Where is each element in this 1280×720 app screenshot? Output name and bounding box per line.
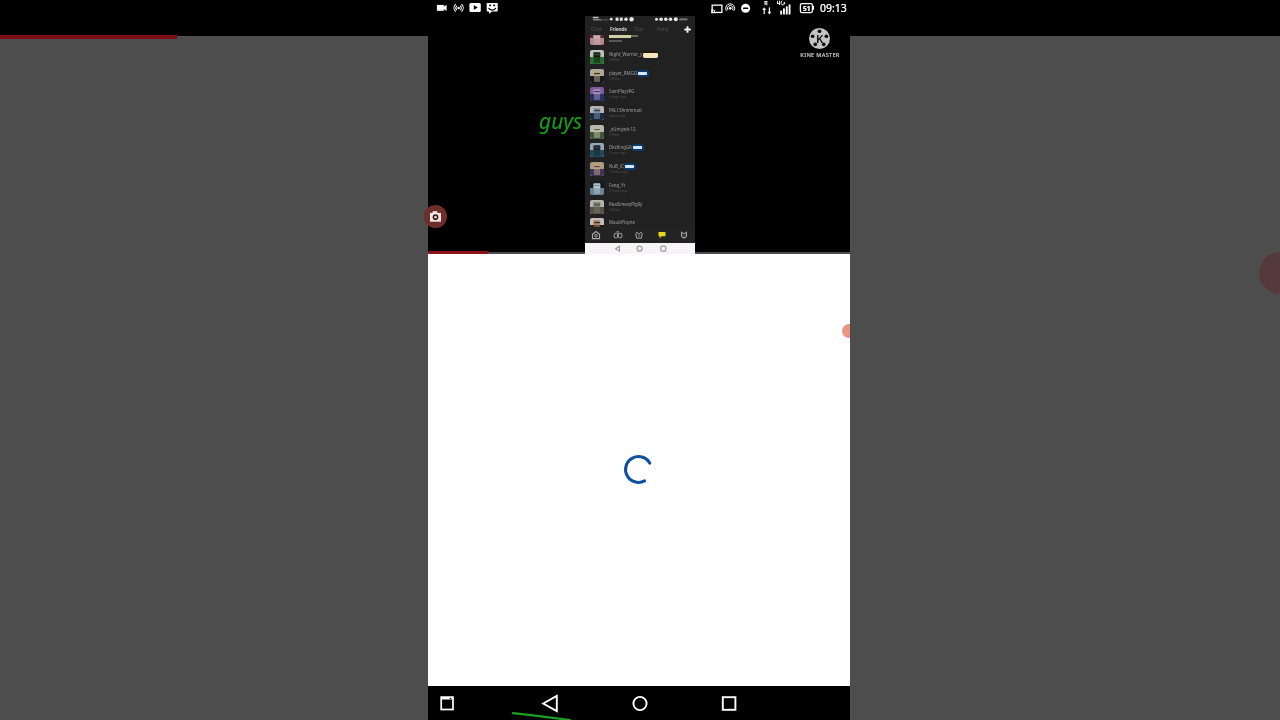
button[interactable] [585, 35, 695, 48]
staticText: Offline [609, 57, 620, 62]
button[interactable]: Add friend [682, 24, 693, 35]
staticText: _xUmiyeh-12 [609, 126, 636, 132]
button[interactable]: Friends [606, 23, 630, 35]
button[interactable]: Shop [631, 229, 647, 241]
staticText: 17mins ago [609, 169, 628, 174]
button[interactable]: NuB_iC [585, 160, 695, 179]
button[interactable]: Fang_Yt [585, 179, 695, 198]
staticText: 6 days ago [609, 94, 627, 99]
staticText: Party [657, 26, 669, 33]
staticText: Offline [609, 132, 620, 137]
staticText: Offline [609, 76, 620, 81]
staticText: 27mins ago [609, 188, 628, 193]
button[interactable]: Night_Warrior_yt [585, 48, 695, 67]
staticText: Fang_Yt [609, 182, 626, 188]
staticText: Chat [591, 26, 602, 33]
staticText: Offline [609, 207, 620, 212]
button[interactable]: Games [610, 229, 626, 241]
staticText: Now [609, 225, 617, 230]
staticText: player_RMGO [609, 70, 638, 76]
button[interactable]: PAL13Animmati [585, 104, 695, 123]
button[interactable]: Chat [654, 229, 670, 241]
staticText: Friends [610, 26, 627, 33]
staticText: KINE MASTER [798, 51, 842, 59]
staticText: DkzKingGAl [609, 144, 634, 150]
button[interactable]: Profile [676, 229, 692, 241]
button[interactable]: MaulzPlayne [585, 216, 695, 235]
button[interactable]: DkzKingGAl [585, 141, 695, 160]
button[interactable]: Chat [587, 23, 605, 35]
staticText: 09:13 [820, 1, 847, 15]
staticText: NuB_iC [609, 163, 624, 169]
staticText: Night_Warrior_yt [609, 51, 644, 57]
button[interactable]: Party [653, 23, 672, 35]
button[interactable]: _xUmiyeh-12 [585, 123, 695, 142]
button[interactable]: SamPlayzRG [585, 85, 695, 104]
staticText: PAL13Animmati [609, 107, 642, 113]
staticText: 2 mins ago [609, 150, 627, 155]
staticText: SamPlayzRG [609, 88, 635, 94]
button[interactable]: player_RMGO [585, 67, 695, 86]
staticText: Clan [634, 26, 644, 33]
staticText: 2mins ago [609, 113, 626, 118]
button[interactable]: Screenshot [424, 205, 447, 228]
button[interactable]: Home [588, 229, 604, 241]
staticText: 51 [803, 4, 811, 13]
staticText: K [816, 31, 824, 46]
button[interactable]: RealSmexyPiglly [585, 198, 695, 217]
button[interactable]: Clan [631, 23, 647, 35]
staticText: RealSmexyPiglly [609, 201, 643, 207]
staticText: guys [539, 107, 583, 136]
staticText: MaulzPlayne [609, 219, 636, 225]
